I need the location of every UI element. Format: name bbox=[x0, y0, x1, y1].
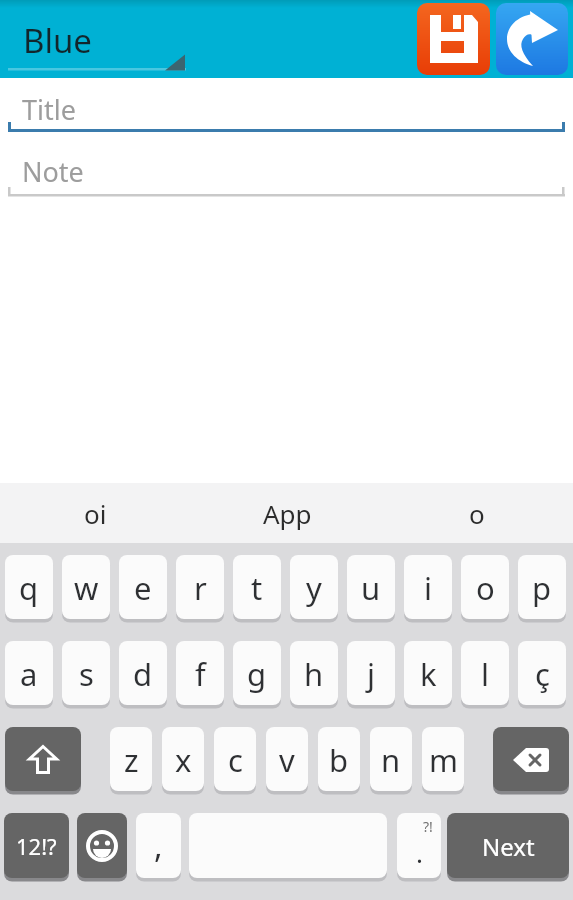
button[interactable]: o bbox=[422, 483, 532, 543]
staticText: v bbox=[279, 739, 295, 781]
button[interactable]: ç bbox=[518, 641, 566, 706]
staticText: f bbox=[195, 653, 206, 695]
staticText: s bbox=[79, 653, 94, 695]
button[interactable]: y bbox=[290, 555, 338, 620]
staticText: Next bbox=[482, 830, 535, 863]
staticText: oi bbox=[84, 496, 107, 531]
staticText: y bbox=[306, 567, 322, 609]
staticText: z bbox=[124, 739, 139, 781]
staticText: o bbox=[476, 567, 495, 609]
button[interactable]: w bbox=[62, 555, 110, 620]
button[interactable]: o bbox=[461, 555, 509, 620]
button[interactable]: z bbox=[110, 727, 152, 792]
staticText: h bbox=[304, 653, 324, 695]
button[interactable] bbox=[189, 813, 387, 879]
button[interactable] bbox=[77, 813, 127, 879]
staticText: 12!? bbox=[16, 831, 57, 861]
staticText: d bbox=[133, 653, 153, 695]
staticText: c bbox=[228, 739, 243, 781]
button[interactable]: Next bbox=[447, 813, 569, 879]
staticText: e bbox=[134, 567, 152, 609]
staticText: r bbox=[194, 567, 207, 609]
staticText: , bbox=[154, 824, 163, 868]
button[interactable]: g bbox=[233, 641, 281, 706]
button[interactable]: d bbox=[119, 641, 167, 706]
button[interactable]: a bbox=[5, 641, 53, 706]
button[interactable]: App bbox=[212, 483, 362, 543]
button[interactable]: m bbox=[422, 727, 464, 792]
button[interactable]: t bbox=[233, 555, 281, 620]
button[interactable]: b bbox=[318, 727, 360, 792]
staticText: ?! bbox=[423, 817, 433, 836]
staticText: x bbox=[175, 739, 192, 781]
staticText: b bbox=[329, 739, 349, 781]
staticText: Blue bbox=[23, 18, 92, 63]
button[interactable]: c bbox=[214, 727, 256, 792]
staticText: a bbox=[20, 653, 38, 695]
button[interactable]: h bbox=[290, 641, 338, 706]
staticText: App bbox=[263, 496, 312, 531]
staticText: ç bbox=[535, 653, 550, 695]
button[interactable]: Blue bbox=[8, 2, 186, 72]
button[interactable]: f bbox=[176, 641, 224, 706]
staticText: n bbox=[381, 739, 401, 781]
staticText: o bbox=[469, 496, 485, 531]
button[interactable]: r bbox=[176, 555, 224, 620]
staticText: u bbox=[361, 567, 381, 609]
button[interactable]: ?! bbox=[397, 813, 441, 879]
button[interactable]: l bbox=[461, 641, 509, 706]
staticText: Note bbox=[22, 153, 84, 190]
button[interactable]: n bbox=[370, 727, 412, 792]
button[interactable]: q bbox=[5, 555, 53, 620]
staticText: l bbox=[481, 653, 489, 695]
button[interactable]: i bbox=[404, 555, 452, 620]
staticText: Title bbox=[22, 91, 76, 128]
staticText: j bbox=[367, 653, 375, 695]
button[interactable]: v bbox=[266, 727, 308, 792]
staticText: k bbox=[420, 653, 437, 695]
button[interactable] bbox=[417, 3, 490, 75]
staticText: g bbox=[247, 653, 267, 695]
staticText: q bbox=[19, 567, 39, 609]
staticText: w bbox=[74, 567, 99, 609]
button[interactable]: e bbox=[119, 555, 167, 620]
button[interactable]: u bbox=[347, 555, 395, 620]
button[interactable]: , bbox=[136, 813, 181, 879]
button[interactable]: s bbox=[62, 641, 110, 706]
button[interactable]: oi bbox=[40, 483, 150, 543]
staticText: p bbox=[532, 567, 552, 609]
button[interactable]: k bbox=[404, 641, 452, 706]
staticText: . bbox=[416, 835, 423, 870]
button[interactable] bbox=[5, 727, 81, 792]
button[interactable]: 12!? bbox=[4, 813, 69, 879]
staticText: t bbox=[251, 567, 263, 609]
staticText: m bbox=[429, 739, 458, 781]
staticText: i bbox=[424, 567, 432, 609]
button[interactable]: j bbox=[347, 641, 395, 706]
button[interactable]: p bbox=[518, 555, 566, 620]
button[interactable]: Note bbox=[6, 140, 567, 198]
button[interactable] bbox=[493, 727, 569, 792]
button[interactable] bbox=[496, 3, 568, 75]
button[interactable]: x bbox=[162, 727, 204, 792]
button[interactable]: Title bbox=[6, 80, 567, 134]
